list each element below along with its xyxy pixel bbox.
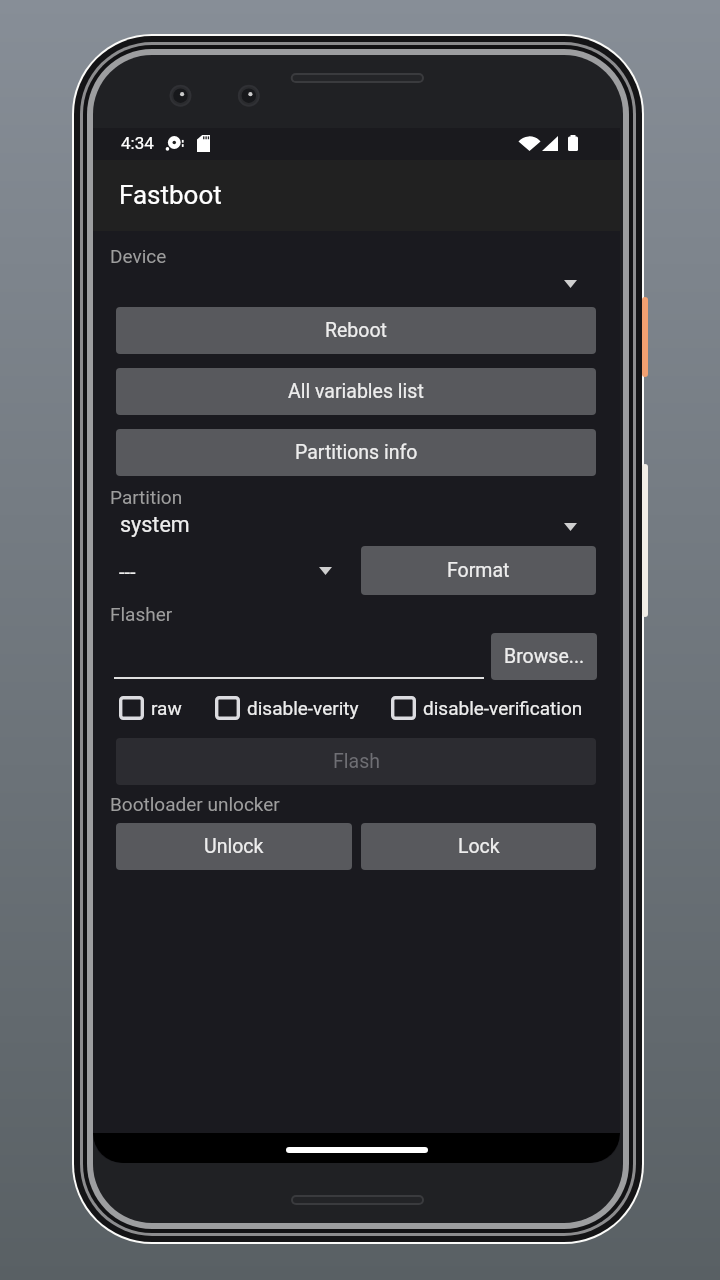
button[interactable]: Open dropdown [310, 559, 340, 583]
staticText: Flash [333, 750, 380, 773]
staticText: --- [119, 560, 136, 583]
staticText: Format [447, 559, 510, 582]
staticText: Reboot [325, 319, 387, 342]
button[interactable]: Lock [361, 823, 596, 870]
staticText: Unlock [204, 835, 264, 858]
button[interactable]: disable-verification [391, 695, 583, 721]
button[interactable]: Unlock [116, 823, 352, 870]
staticText: Bootloader unlocker [110, 793, 280, 815]
staticText: Device [110, 245, 167, 267]
button[interactable]: raw [119, 695, 182, 721]
staticText: Partition [110, 486, 183, 508]
staticText: Flasher [110, 603, 173, 625]
staticText: Partitions info [295, 441, 418, 464]
button[interactable]: Open dropdown [555, 515, 585, 539]
other: Power button [642, 297, 648, 377]
staticText: 4:34 [121, 133, 154, 153]
staticText: All variables list [288, 380, 424, 403]
staticText: Lock [458, 835, 500, 858]
button[interactable]: Reboot [116, 307, 596, 354]
button[interactable]: All variables list [116, 368, 596, 415]
button[interactable]: Open dropdown [555, 272, 585, 296]
other: Volume button [642, 464, 648, 617]
staticText: Fastboot [119, 180, 222, 210]
staticText: disable-verification [423, 697, 583, 719]
staticText: system [120, 512, 190, 537]
button[interactable]: Partitions info [116, 429, 596, 476]
button[interactable]: Flash [116, 738, 596, 785]
button[interactable]: Format [361, 546, 596, 595]
button[interactable]: disable-verity [215, 695, 359, 721]
button[interactable]: Browse... [491, 633, 597, 680]
staticText: raw [151, 697, 182, 719]
staticText: disable-verity [247, 697, 359, 719]
staticText: Browse... [504, 645, 585, 668]
